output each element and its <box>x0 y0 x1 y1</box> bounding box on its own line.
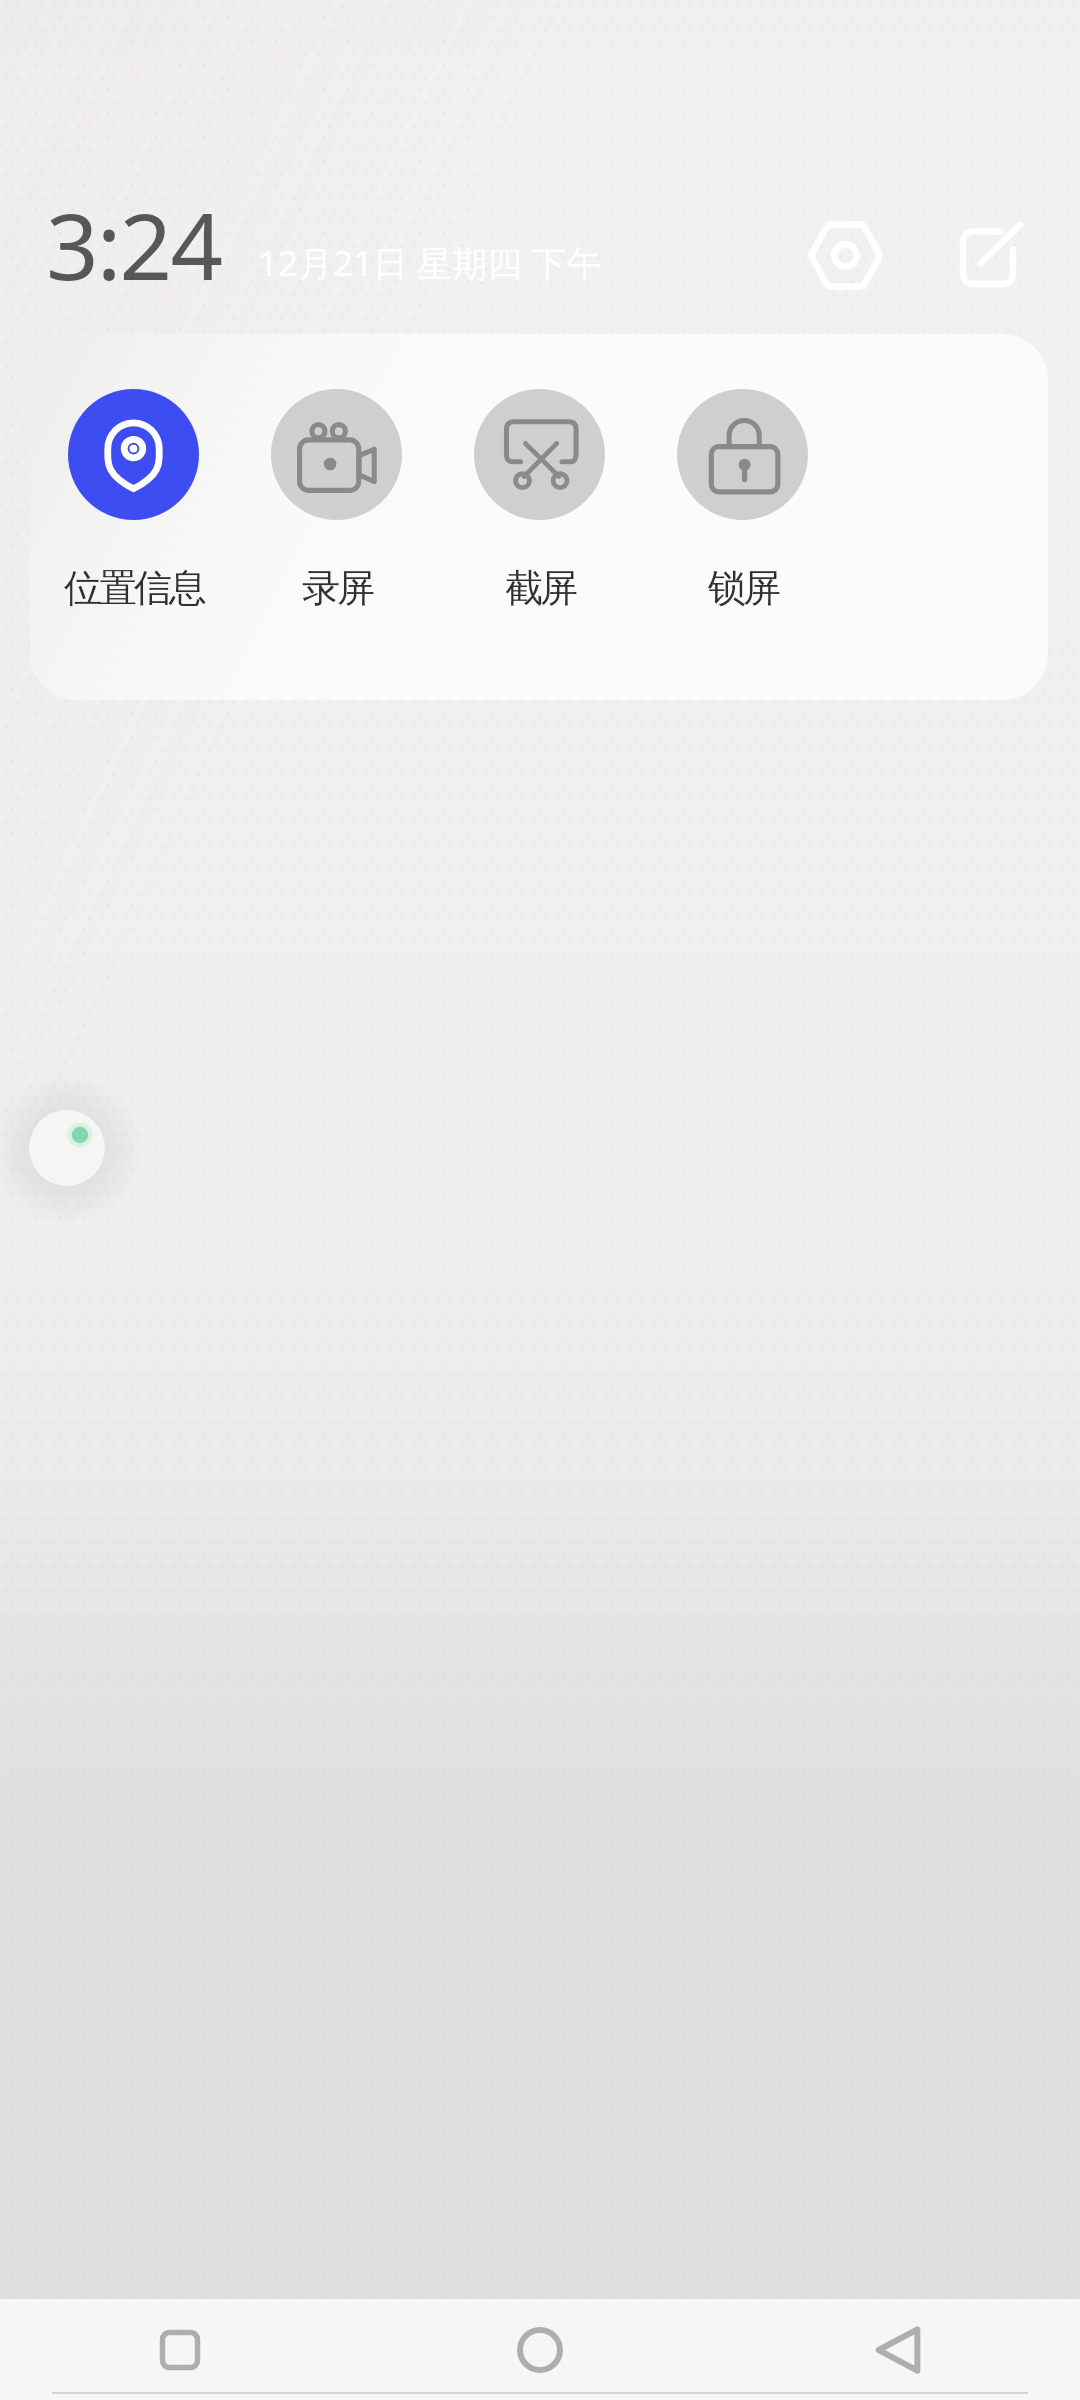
button[interactable]: Assistive ball <box>0 1068 147 1228</box>
staticText: 录屏 <box>302 564 372 612</box>
staticText: 12月21日 星期四 下午 <box>258 239 602 287</box>
staticText: 截屏 <box>505 564 575 612</box>
button[interactable]: 锁屏 <box>641 334 844 700</box>
button[interactable]: 截屏 <box>438 334 641 700</box>
staticText: 位置信息 <box>64 564 204 612</box>
staticText: 锁屏 <box>708 564 778 612</box>
button[interactable]: 位置信息 <box>32 334 235 700</box>
staticText: 3:24 <box>46 182 222 286</box>
button[interactable]: Back <box>854 2299 942 2400</box>
button[interactable]: 录屏 <box>235 334 438 700</box>
button[interactable]: Edit shortcuts <box>935 202 1041 308</box>
button[interactable]: Recents <box>136 2299 224 2400</box>
button[interactable]: Quick settings <box>792 202 898 308</box>
button[interactable]: Home <box>496 2299 584 2400</box>
